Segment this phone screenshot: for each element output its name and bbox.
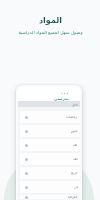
staticText: لغة bbox=[73, 143, 78, 147]
button[interactable]: فقه bbox=[20, 153, 80, 165]
button[interactable]: رياضيات bbox=[20, 111, 80, 123]
button[interactable]: فن bbox=[20, 181, 80, 193]
staticText: الكل bbox=[72, 103, 78, 106]
staticText: جغرافيا bbox=[68, 195, 78, 199]
staticText: المواد bbox=[39, 16, 62, 25]
staticText: رياضيات bbox=[66, 115, 78, 119]
button[interactable]: تاريخ bbox=[20, 167, 80, 179]
button[interactable]: علوم bbox=[20, 125, 80, 137]
staticText: علوم bbox=[71, 129, 78, 133]
button[interactable]: جغرافيا bbox=[20, 195, 80, 199]
staticText: فن bbox=[74, 185, 78, 189]
button[interactable]: لغة bbox=[20, 139, 80, 151]
staticText: فقه bbox=[73, 157, 78, 161]
staticText: تاريخ bbox=[71, 171, 78, 175]
staticText: وصول سهل لجميع المواد الدراسية bbox=[18, 29, 83, 35]
staticText: مدرستي bbox=[54, 97, 70, 101]
